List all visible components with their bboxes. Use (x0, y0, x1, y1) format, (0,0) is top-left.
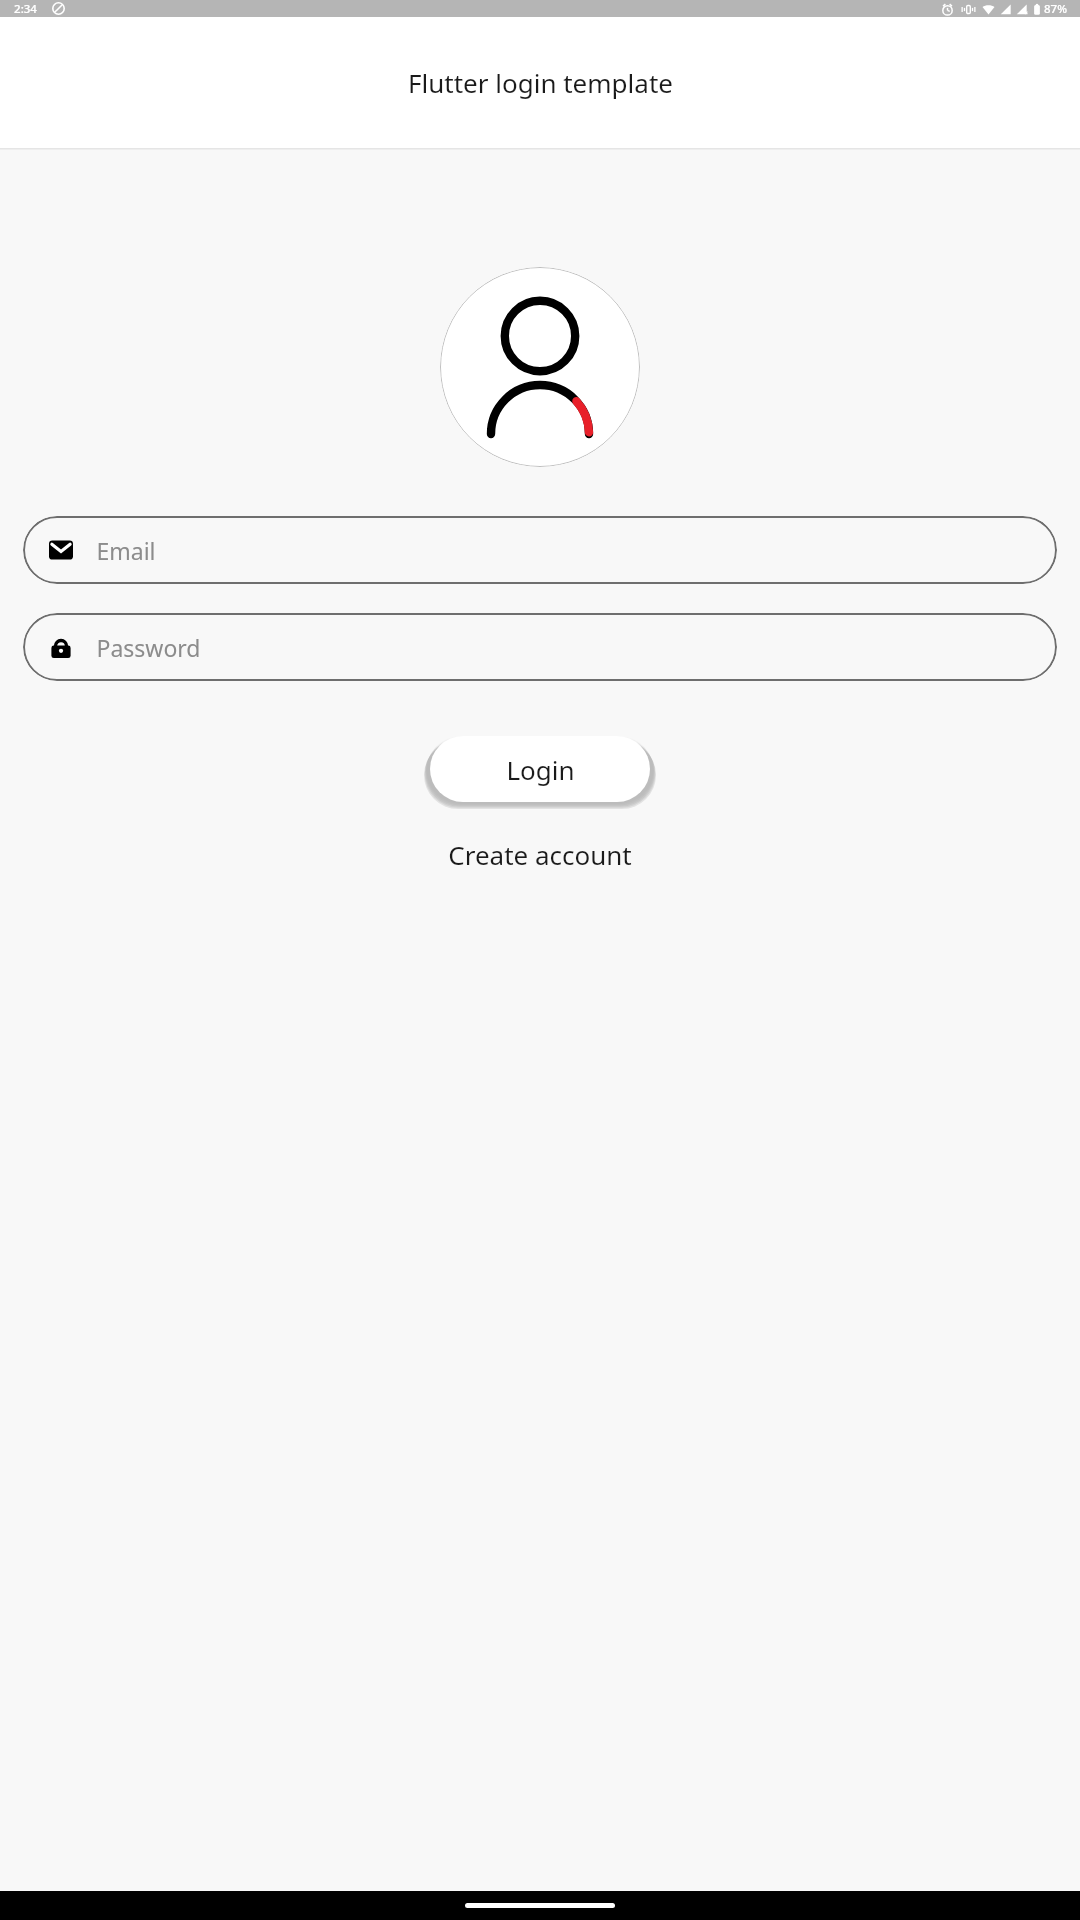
staticText: Password (96, 632, 201, 663)
button[interactable]: Password (23, 613, 1057, 681)
other: Home gesture bar (465, 1903, 615, 1908)
button[interactable]: Create account (436, 829, 644, 880)
button[interactable]: Email (23, 516, 1057, 584)
staticText: Email (96, 535, 156, 566)
staticText: Create account (448, 837, 632, 872)
staticText: 2:34 (14, 1, 37, 17)
staticText: Login (506, 752, 575, 787)
staticText: Flutter login template (408, 65, 673, 100)
button[interactable]: Login (430, 736, 650, 802)
staticText: 87% (1044, 1, 1067, 17)
